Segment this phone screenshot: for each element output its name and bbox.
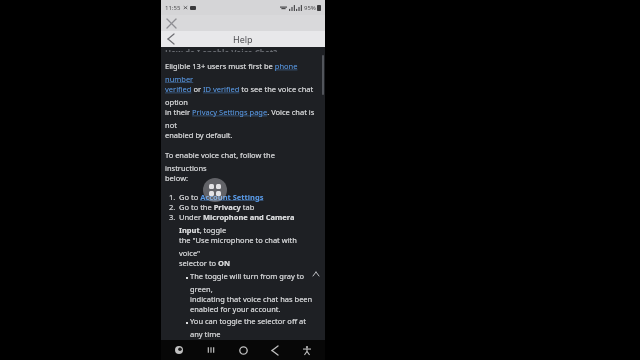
staticText: selector to ON (179, 258, 231, 268)
staticText: enabled for your account. (190, 304, 281, 314)
staticText: Go to the Privacy tab (179, 202, 255, 212)
staticText: How do I enable Voice Chat? (165, 47, 278, 52)
staticText: 95% (304, 4, 316, 12)
staticText: below: (165, 173, 189, 183)
staticText: Help (233, 33, 253, 45)
staticText: Go to Account Settings (179, 192, 264, 202)
button[interactable]: Keyboard switch (164, 340, 194, 360)
staticText: verified or ID verified to see the voice… (165, 84, 317, 107)
staticText: indicating that voice chat has been (190, 294, 313, 304)
button[interactable]: Accessibility (292, 340, 322, 360)
staticText: Eligible 13+ users must first be phone n… (165, 61, 317, 84)
staticText: 11:55 (165, 4, 181, 12)
button[interactable]: Recents (196, 340, 226, 360)
button[interactable]: Close (163, 15, 179, 31)
staticText: 2. (169, 202, 176, 212)
staticText: enabled by default. (165, 130, 233, 140)
staticText: To enable voice chat, follow the instruc… (165, 150, 317, 173)
staticText: 1. (169, 192, 176, 202)
staticText: The toggle will turn from gray to green, (190, 271, 317, 294)
staticText: You can toggle the selector off at any t… (190, 316, 317, 339)
staticText: in their Privacy Settings page. Voice ch… (165, 107, 317, 130)
button[interactable]: Home (228, 340, 258, 360)
staticText: the "Use microphone to chat with voice" (179, 235, 317, 258)
staticText: 3. (169, 212, 176, 222)
button[interactable]: Back (163, 31, 179, 47)
staticText: Under Microphone and Camera Input, toggl… (179, 212, 317, 235)
button[interactable]: Back (260, 340, 290, 360)
